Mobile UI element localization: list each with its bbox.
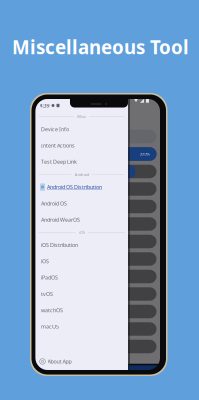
staticText: iOS <box>41 258 49 265</box>
staticText: About App <box>47 358 71 365</box>
button[interactable]: tvOS <box>35 286 128 302</box>
staticText: Intent Actions <box>41 142 75 149</box>
button[interactable]: About App <box>35 353 128 370</box>
staticText: iPadOS <box>41 274 58 281</box>
button[interactable]: Intent Actions <box>35 137 128 154</box>
staticText: Device Info <box>41 126 69 133</box>
button[interactable]: iOS <box>35 253 128 269</box>
button[interactable]: Android WearOS <box>35 211 128 228</box>
staticText: watchOS <box>41 307 63 314</box>
staticText: iOS Distribution <box>41 241 78 248</box>
button[interactable]: Test Deep Link <box>35 154 128 170</box>
button[interactable]: Device Info <box>35 121 128 137</box>
staticText: 39.0% <box>139 151 149 157</box>
button[interactable]: iOS Distribution <box>35 237 128 253</box>
staticText: Android <box>75 172 89 177</box>
staticText: iOS <box>79 230 85 235</box>
staticText: 4:39 <box>39 102 49 109</box>
staticText: Android OS Distribution <box>47 183 102 191</box>
button[interactable]: macOS <box>35 318 128 335</box>
button[interactable]: iPadOS <box>35 269 128 286</box>
button[interactable]: watchOS <box>35 302 128 318</box>
staticText: Miscellaneous Tool <box>12 34 189 59</box>
staticText: Android OS <box>41 200 67 207</box>
staticText: tvOS <box>41 290 53 297</box>
staticText: macOS <box>41 323 59 330</box>
button[interactable]: Android OS <box>35 195 128 211</box>
staticText: Test Deep Link <box>41 158 77 165</box>
button[interactable]: Android OS Distribution <box>35 179 128 195</box>
staticText: Misc <box>77 114 86 119</box>
staticText: Android WearOS <box>41 216 80 223</box>
